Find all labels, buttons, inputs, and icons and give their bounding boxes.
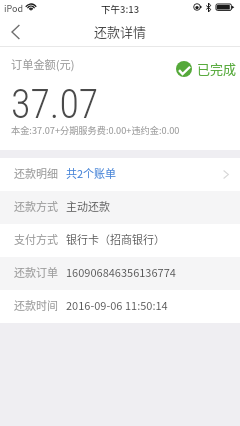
- staticText: 已完成: [197, 59, 237, 78]
- button[interactable]: 还款订单: [0, 257, 240, 290]
- staticText: 本金:37.07+分期服务费:0.00+违约金:0.00: [11, 123, 180, 136]
- button[interactable]: 支付方式: [0, 224, 240, 257]
- button[interactable]: 还款时间: [0, 290, 240, 323]
- staticText: 还款详情: [94, 22, 147, 41]
- button[interactable]: 还款明细: [0, 158, 240, 191]
- staticText: 银行卡（招商银行）: [66, 231, 165, 247]
- staticText: 支付方式: [14, 231, 58, 247]
- staticText: 2016-09-06 11:50:14: [66, 297, 168, 313]
- staticText: 37.07: [11, 81, 99, 128]
- staticText: 还款订单: [14, 264, 58, 280]
- staticText: 还款明细: [14, 165, 58, 181]
- button[interactable]: 还款方式: [0, 191, 240, 224]
- button[interactable]: 返回: [0, 16, 38, 47]
- staticText: iPod: [4, 2, 23, 15]
- staticText: 还款方式: [14, 198, 58, 214]
- staticText: 160906846356136774: [66, 264, 176, 280]
- staticText: 共2个账单: [66, 165, 117, 181]
- staticText: 下午3:13: [101, 2, 140, 16]
- staticText: 还款时间: [14, 297, 58, 313]
- staticText: 主动还款: [66, 198, 110, 214]
- staticText: 订单金额(元): [11, 56, 75, 72]
